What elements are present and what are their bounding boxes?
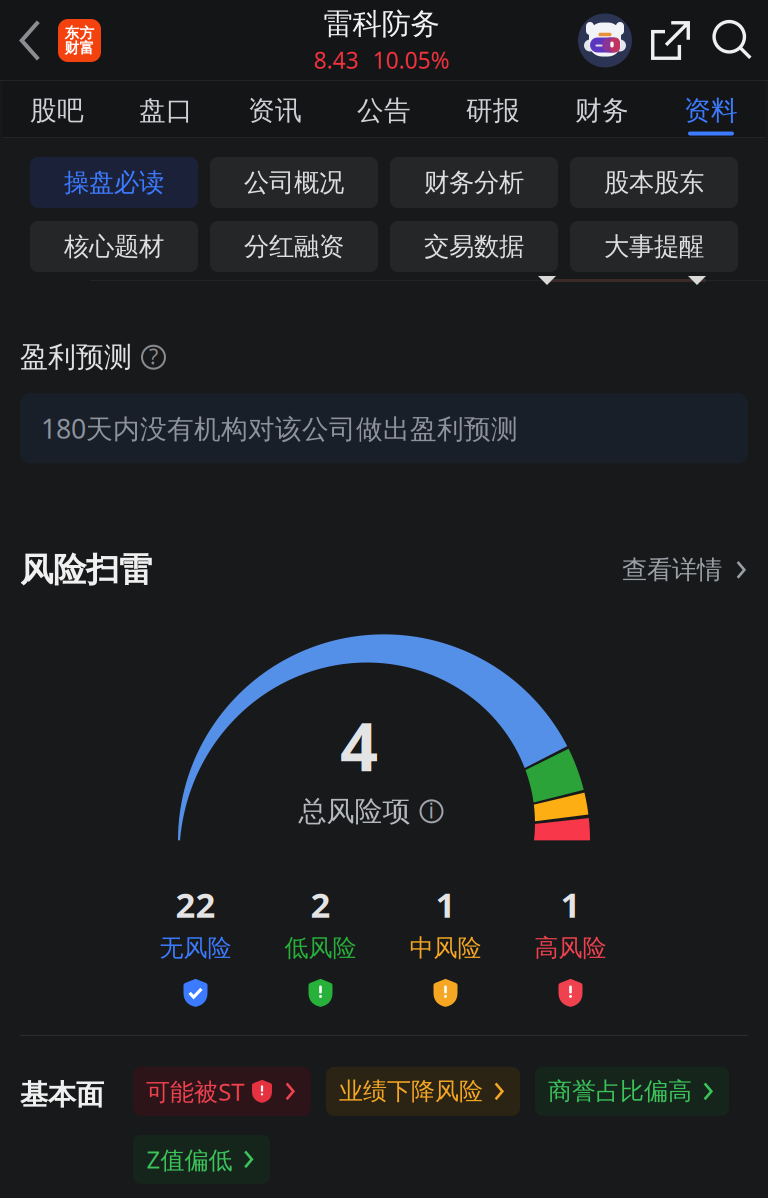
button[interactable]: 股吧 (2, 81, 111, 138)
button[interactable]: 研报 (438, 81, 547, 138)
button[interactable]: 财务分析 (390, 157, 558, 208)
staticText: 研报 (466, 94, 520, 127)
staticText: 1 (435, 881, 455, 927)
staticText: 操盘必读 (64, 167, 164, 198)
staticText: 风险扫雷 (20, 549, 152, 590)
staticText: 财务 (575, 94, 629, 127)
staticText: 公司概况 (244, 167, 344, 198)
button[interactable]: 资讯 (220, 81, 329, 138)
button[interactable]: 交易数据 (390, 221, 558, 272)
button[interactable]: 业绩下降风险 (326, 1067, 520, 1116)
staticText: 资讯 (248, 94, 302, 127)
staticText: ? (149, 342, 158, 370)
button[interactable]: 可能被ST (133, 1067, 311, 1116)
staticText: 1 (560, 881, 580, 927)
staticText: 10.05% (372, 45, 449, 75)
button[interactable]: 财务 (547, 81, 656, 138)
staticText: 分红融资 (244, 231, 344, 262)
staticText: 资料 (684, 94, 738, 127)
button[interactable]: 盘口 (111, 81, 220, 138)
staticText: 查看详情 (622, 554, 722, 585)
staticText: 中风险 (409, 933, 481, 963)
staticText: 4 (340, 701, 378, 790)
button[interactable]: 商誉占比偏高 (535, 1067, 729, 1116)
button[interactable]: 分享 (652, 9, 706, 71)
staticText: 基本面 (20, 1078, 104, 1112)
button[interactable]: 公司概况 (210, 157, 378, 208)
staticText: 业绩下降风险 (339, 1077, 483, 1106)
staticText: 高风险 (534, 933, 606, 963)
staticText: 盈利预测 (20, 340, 132, 374)
staticText: 无风险 (159, 933, 231, 963)
staticText: 180天内没有机构对该公司做出盈利预测 (41, 411, 518, 446)
button[interactable]: 东方财富 (53, 19, 101, 62)
staticText: 股本股东 (604, 167, 704, 198)
button[interactable]: 查看详情 (622, 554, 749, 585)
staticText: 22 (175, 881, 215, 927)
staticText: 大事提醒 (604, 231, 704, 262)
staticText: 东方 (64, 24, 94, 42)
staticText: 2 (310, 881, 330, 927)
button[interactable]: 公告 (329, 81, 438, 138)
button[interactable]: 返回 (0, 14, 53, 66)
staticText: 公告 (357, 94, 411, 127)
staticText: 财务分析 (424, 167, 524, 198)
staticText: 核心题材 (64, 231, 164, 262)
button[interactable]: 智能助手 (576, 9, 652, 71)
staticText: 财富 (64, 39, 94, 57)
staticText: 雷科防务 (323, 6, 439, 42)
staticText: 8.43 (313, 45, 358, 75)
staticText: i (428, 796, 434, 824)
button[interactable]: 股本股东 (570, 157, 738, 208)
button[interactable]: 操盘必读 (30, 157, 198, 208)
button[interactable]: 资料 (656, 81, 765, 138)
staticText: 总风险项 (298, 794, 410, 828)
button[interactable]: 大事提醒 (570, 221, 738, 272)
button[interactable]: 搜索 (706, 9, 768, 71)
staticText: 低风险 (284, 933, 356, 963)
button[interactable]: 核心题材 (30, 221, 198, 272)
staticText: 盘口 (139, 94, 193, 127)
staticText: 商誉占比偏高 (548, 1077, 692, 1106)
staticText: 股吧 (30, 94, 84, 127)
staticText: 交易数据 (424, 231, 524, 262)
staticText: 可能被ST (146, 1075, 244, 1107)
button[interactable]: 分红融资 (210, 221, 378, 272)
button[interactable]: Z值偏低 (133, 1135, 270, 1184)
staticText: Z值偏低 (146, 1143, 232, 1175)
